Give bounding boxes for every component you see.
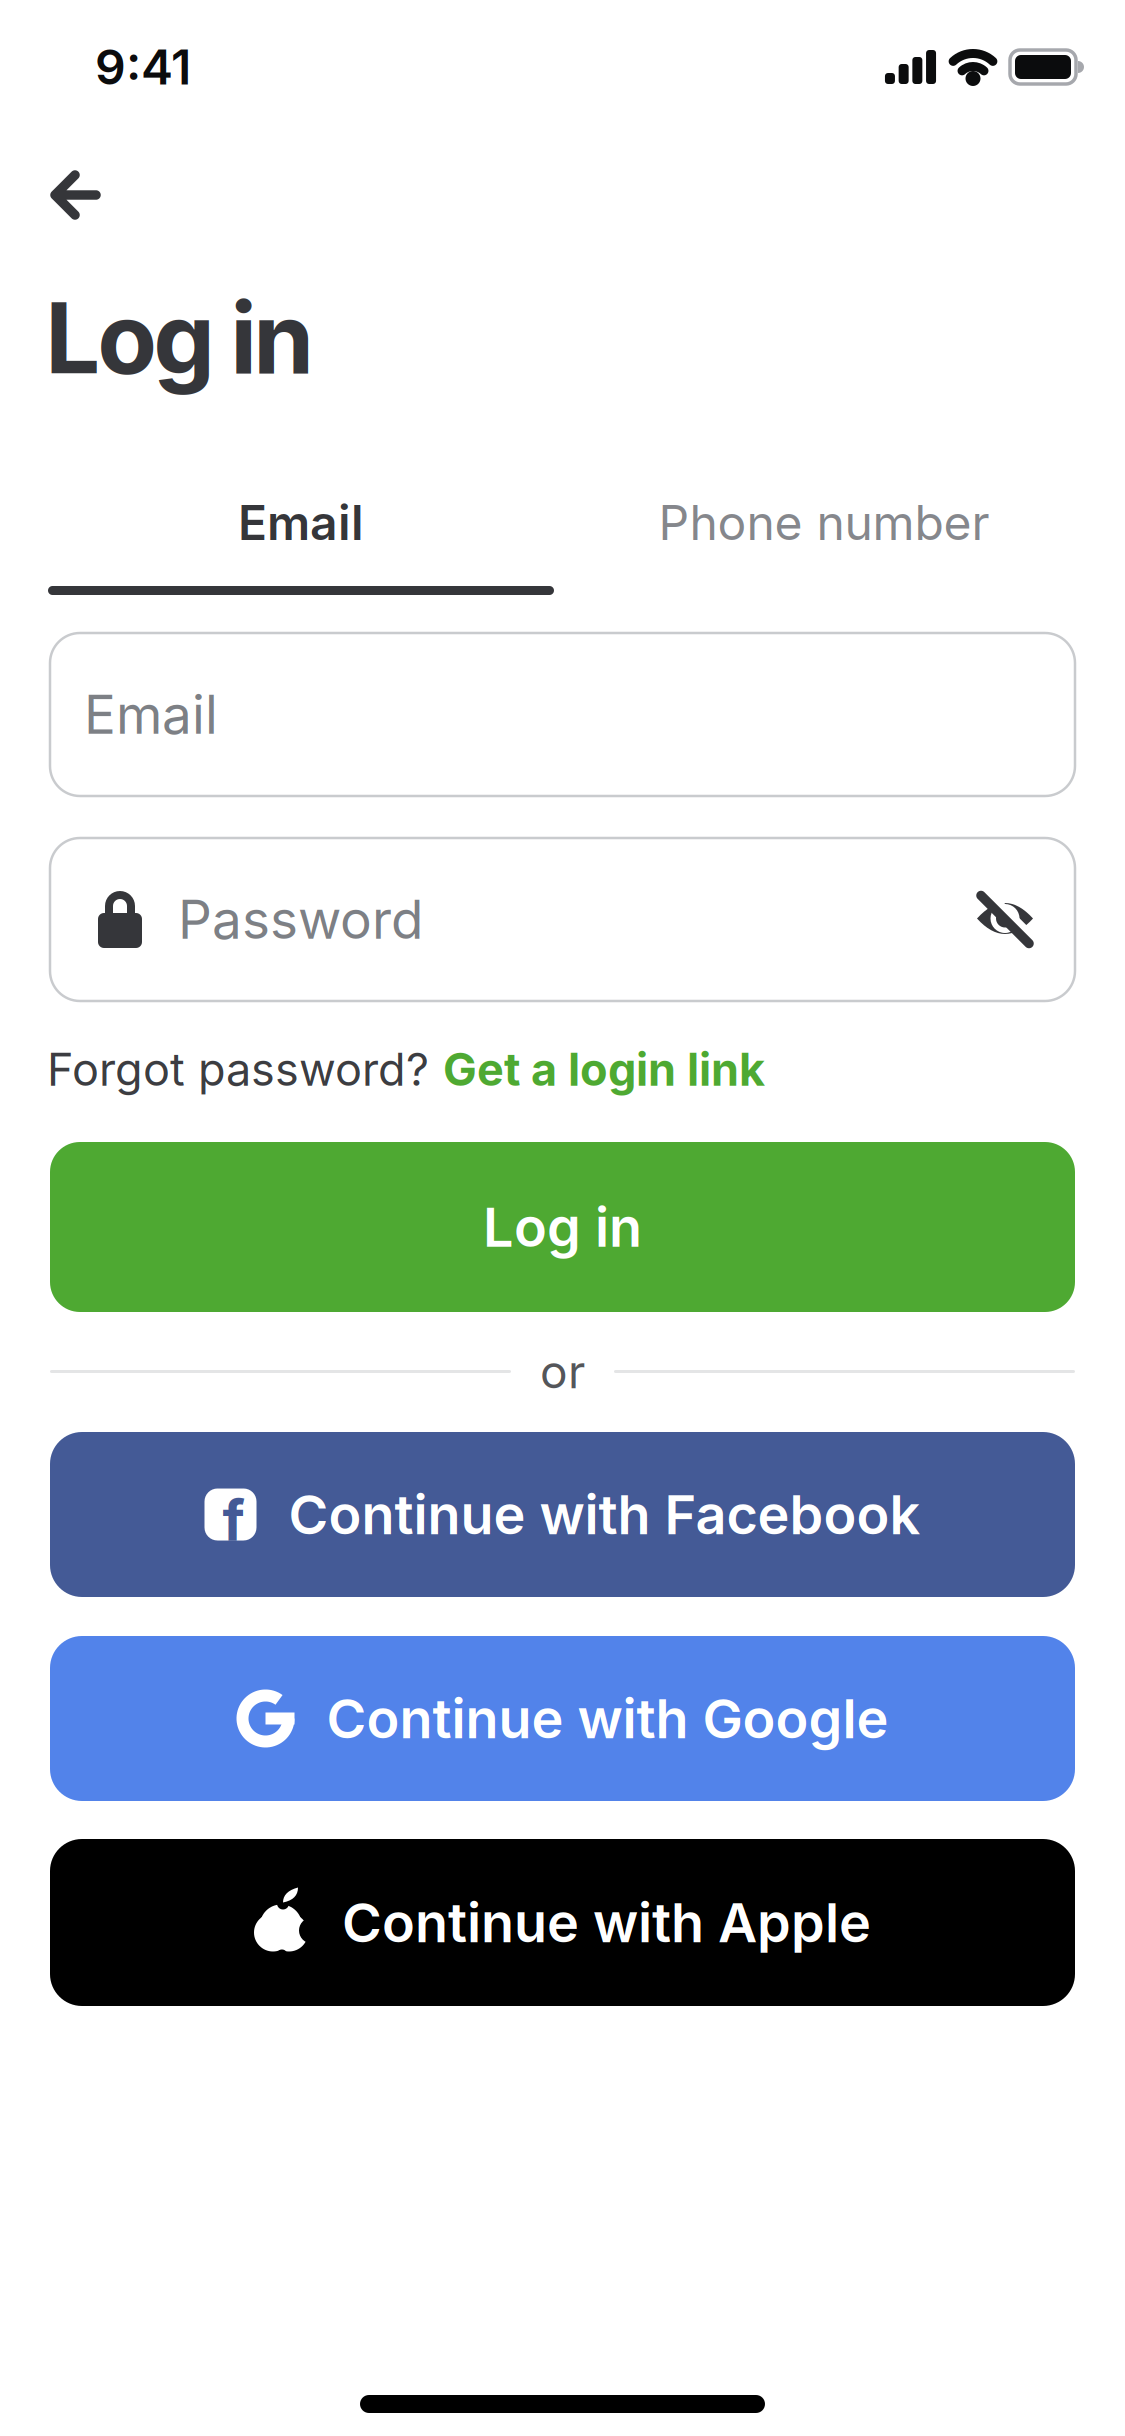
staticText: 9:41	[95, 38, 191, 96]
staticText: Log in	[483, 1194, 642, 1260]
staticText: Continue with Apple	[342, 1890, 871, 1955]
button[interactable]: f	[50, 1432, 1075, 1597]
button[interactable]: Get a login link	[443, 1042, 765, 1097]
staticText: f	[222, 1487, 244, 1554]
staticText: Password	[178, 887, 423, 951]
button[interactable]: Back	[50, 171, 100, 219]
button[interactable]: Log in	[50, 1142, 1075, 1312]
staticText: Continue with Google	[326, 1686, 888, 1751]
staticText: Forgot password?	[47, 1042, 429, 1097]
button[interactable]: Show password	[975, 889, 1035, 949]
staticText: or	[540, 1344, 585, 1399]
staticText: Email	[238, 493, 364, 552]
button[interactable]: Phone number	[554, 493, 1094, 552]
button[interactable]: Email	[48, 493, 554, 552]
button[interactable]: Continue with Google	[50, 1636, 1075, 1801]
staticText: Email	[84, 682, 218, 746]
staticText: Log in	[47, 279, 312, 397]
staticText: Continue with Facebook	[288, 1482, 920, 1547]
staticText: Get a login link	[443, 1042, 765, 1097]
button[interactable]: Continue with Apple	[50, 1839, 1075, 2006]
staticText: Phone number	[658, 493, 989, 552]
